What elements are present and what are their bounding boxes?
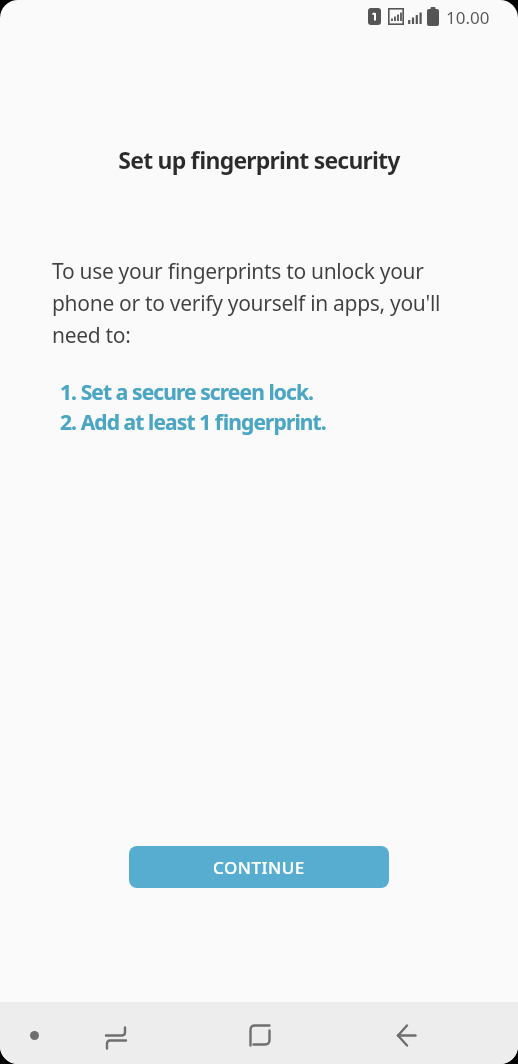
- staticText: Set up fingerprint security: [0, 144, 518, 175]
- staticText: 1. Set a secure screen lock. 2. Add at l…: [60, 378, 326, 436]
- button[interactable]: [240, 1015, 280, 1055]
- button[interactable]: [22, 1023, 47, 1048]
- button[interactable]: [96, 1015, 136, 1055]
- staticText: CONTINUE: [213, 856, 305, 879]
- staticText: To use your fingerprints to unlock your …: [52, 257, 441, 349]
- button[interactable]: [386, 1015, 426, 1055]
- staticText: 10.00: [446, 6, 490, 29]
- button[interactable]: CONTINUE: [129, 846, 389, 888]
